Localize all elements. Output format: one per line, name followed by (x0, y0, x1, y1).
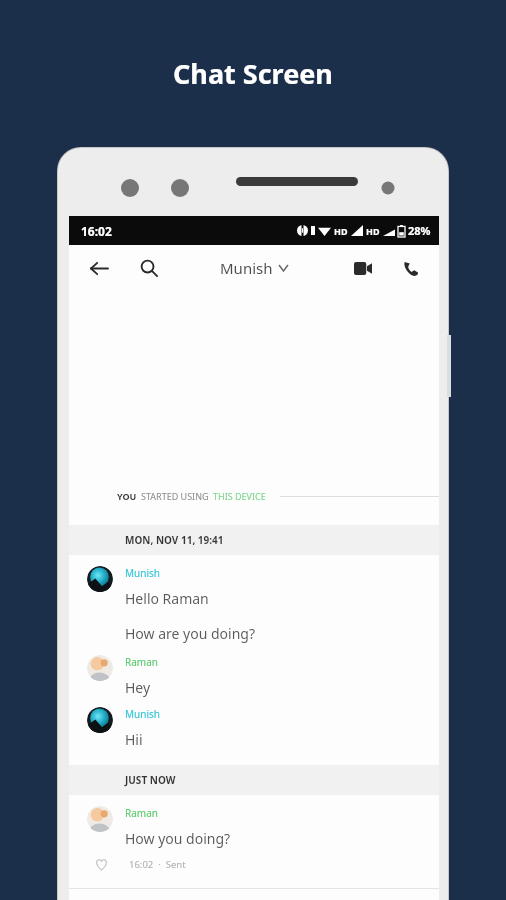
staticText: Chat Screen (173, 55, 333, 92)
button[interactable]: Call (393, 250, 429, 286)
button[interactable]: Search (131, 250, 167, 286)
button[interactable]: Munish (69, 705, 439, 751)
staticText: YOU (117, 490, 137, 502)
staticText: HD (366, 225, 380, 237)
staticText: Hii (125, 730, 143, 749)
staticText: Raman (125, 655, 158, 669)
button[interactable]: Munish (69, 564, 439, 645)
staticText: 28% (408, 223, 431, 238)
staticText: Munish (125, 707, 160, 721)
staticText: HD (334, 225, 348, 237)
staticText: How are you doing? (125, 624, 256, 643)
button[interactable]: Back (81, 250, 117, 286)
staticText: STARTED USING (141, 490, 209, 502)
staticText: Munish (125, 566, 160, 580)
staticText: Munish (220, 258, 273, 278)
button[interactable]: Raman (69, 804, 439, 850)
staticText: Hey (125, 678, 151, 697)
button[interactable]: Raman (69, 653, 439, 699)
button[interactable]: Munish (220, 258, 288, 278)
button[interactable]: Like (91, 854, 111, 874)
staticText: 16:02 (81, 223, 112, 239)
button[interactable]: Video call (345, 250, 381, 286)
staticText: How you doing? (125, 829, 231, 848)
staticText: 16:02 · Sent (129, 858, 186, 871)
staticText: Hello Raman (125, 589, 209, 608)
staticText: THIS DEVICE (213, 490, 266, 502)
staticText: JUST NOW (125, 773, 176, 787)
staticText: MON, NOV 11, 19:41 (125, 533, 224, 547)
staticText: Raman (125, 806, 158, 820)
